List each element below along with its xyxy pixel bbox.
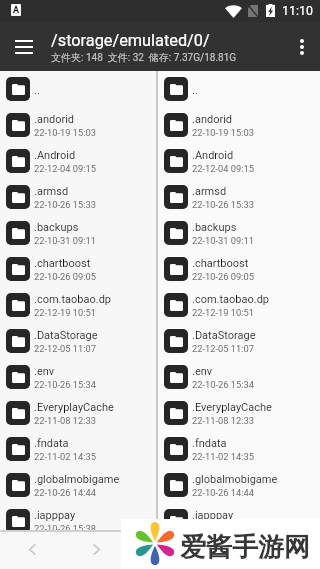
button[interactable]: Open navigation drawer bbox=[0, 23, 48, 71]
staticText: .backups bbox=[192, 221, 237, 234]
staticText: .armsd bbox=[192, 185, 227, 198]
staticText: 22-10-26 15:38 bbox=[34, 523, 96, 534]
staticText: .com.taobao.dp bbox=[34, 293, 112, 306]
staticText: .globalmobigame bbox=[192, 473, 278, 486]
staticText: .andorid bbox=[192, 113, 233, 126]
button[interactable]: .com.taobao.dp bbox=[158, 287, 320, 323]
staticText: 22-12-05 11:07 bbox=[192, 343, 254, 354]
staticText: /storage/emulated/0/ bbox=[51, 31, 210, 50]
staticText: 22-12-05 11:07 bbox=[34, 343, 96, 354]
staticText: .EveryplayCache bbox=[34, 401, 114, 414]
staticText: 22-12-04 09:15 bbox=[192, 163, 254, 174]
staticText: 22-12-19 10:51 bbox=[192, 307, 254, 318]
staticText: 22-10-26 15:33 bbox=[34, 199, 96, 210]
button[interactable]: .armsd bbox=[158, 179, 320, 215]
button[interactable]: .fndata bbox=[0, 431, 156, 467]
staticText: 22-12-19 10:51 bbox=[34, 307, 96, 318]
button[interactable]: .. bbox=[0, 71, 156, 107]
staticText: .andorid bbox=[34, 113, 75, 126]
staticText: A bbox=[13, 5, 19, 16]
button[interactable]: .env bbox=[158, 359, 320, 395]
staticText: 11:10 bbox=[282, 3, 313, 18]
staticText: 22-10-19 15:03 bbox=[192, 127, 254, 138]
staticText: 22-10-26 15:38 bbox=[192, 523, 254, 534]
button[interactable]: .env bbox=[0, 359, 156, 395]
button[interactable]: .iapppay bbox=[0, 503, 156, 539]
staticText: 爱酱手游网 bbox=[180, 531, 310, 564]
staticText: 22-12-04 09:15 bbox=[34, 163, 96, 174]
button[interactable]: .iapppay bbox=[158, 503, 320, 539]
button[interactable]: Refresh bbox=[256, 530, 320, 569]
staticText: 22-11-02 14:35 bbox=[192, 451, 254, 462]
button[interactable]: .chartboost bbox=[158, 251, 320, 287]
staticText: .globalmobigame bbox=[34, 473, 120, 486]
button[interactable]: .fndata bbox=[158, 431, 320, 467]
staticText: .chartboost bbox=[34, 257, 91, 270]
staticText: 22-10-26 15:34 bbox=[192, 379, 254, 390]
button[interactable]: .DataStorage bbox=[158, 323, 320, 359]
staticText: 22-10-26 15:33 bbox=[192, 199, 254, 210]
button[interactable]: .andorid bbox=[158, 107, 320, 143]
staticText: 22-10-26 15:34 bbox=[34, 379, 96, 390]
button[interactable]: Forward bbox=[64, 530, 128, 569]
staticText: .iapppay bbox=[192, 509, 234, 522]
staticText: 文件夹: 148 文件: 32 储存: 7.37G/18.81G bbox=[51, 51, 237, 64]
staticText: 22-10-19 15:03 bbox=[34, 127, 96, 138]
button[interactable]: Up bbox=[128, 530, 192, 569]
staticText: 22-10-26 09:05 bbox=[192, 271, 254, 282]
button[interactable]: .com.taobao.dp bbox=[0, 287, 156, 323]
button[interactable]: .armsd bbox=[0, 179, 156, 215]
staticText: .Android bbox=[34, 149, 76, 162]
button[interactable]: .. bbox=[158, 71, 320, 107]
staticText: 22-11-08 12:33 bbox=[192, 415, 254, 426]
button[interactable]: .globalmobigame bbox=[0, 467, 156, 503]
staticText: .iapppay bbox=[34, 509, 76, 522]
staticText: 22-10-26 14:44 bbox=[192, 487, 254, 498]
staticText: .com.taobao.dp bbox=[192, 293, 270, 306]
staticText: .. bbox=[192, 84, 198, 97]
staticText: 22-10-31 09:11 bbox=[192, 235, 254, 246]
staticText: .chartboost bbox=[192, 257, 249, 270]
staticText: .fndata bbox=[192, 437, 227, 450]
staticText: 22-10-26 14:44 bbox=[34, 487, 96, 498]
button[interactable]: Back bbox=[0, 530, 64, 569]
button[interactable]: Home bbox=[192, 530, 256, 569]
staticText: .backups bbox=[34, 221, 79, 234]
staticText: 22-11-02 14:35 bbox=[34, 451, 96, 462]
staticText: .. bbox=[34, 84, 40, 97]
staticText: 22-10-31 09:11 bbox=[34, 235, 96, 246]
button[interactable]: .globalmobigame bbox=[158, 467, 320, 503]
button[interactable]: .chartboost bbox=[0, 251, 156, 287]
staticText: .env bbox=[192, 365, 213, 378]
button[interactable]: .Android bbox=[158, 143, 320, 179]
button[interactable]: .EveryplayCache bbox=[0, 395, 156, 431]
button[interactable]: .DataStorage bbox=[0, 323, 156, 359]
staticText: .fndata bbox=[34, 437, 69, 450]
staticText: .Android bbox=[192, 149, 234, 162]
staticText: .env bbox=[34, 365, 55, 378]
staticText: .DataStorage bbox=[34, 329, 98, 342]
button[interactable]: .EveryplayCache bbox=[158, 395, 320, 431]
staticText: .EveryplayCache bbox=[192, 401, 272, 414]
button[interactable]: .backups bbox=[158, 215, 320, 251]
button[interactable]: .andorid bbox=[0, 107, 156, 143]
button[interactable]: .backups bbox=[0, 215, 156, 251]
button[interactable]: .Android bbox=[0, 143, 156, 179]
staticText: .armsd bbox=[34, 185, 69, 198]
staticText: 22-11-08 12:33 bbox=[34, 415, 96, 426]
button[interactable]: More options bbox=[284, 23, 320, 71]
staticText: .DataStorage bbox=[192, 329, 256, 342]
staticText: 22-10-26 09:05 bbox=[34, 271, 96, 282]
